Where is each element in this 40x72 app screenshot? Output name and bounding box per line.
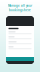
staticText: bookings here (9, 8, 31, 12)
staticText: Manage all your (8, 4, 32, 7)
